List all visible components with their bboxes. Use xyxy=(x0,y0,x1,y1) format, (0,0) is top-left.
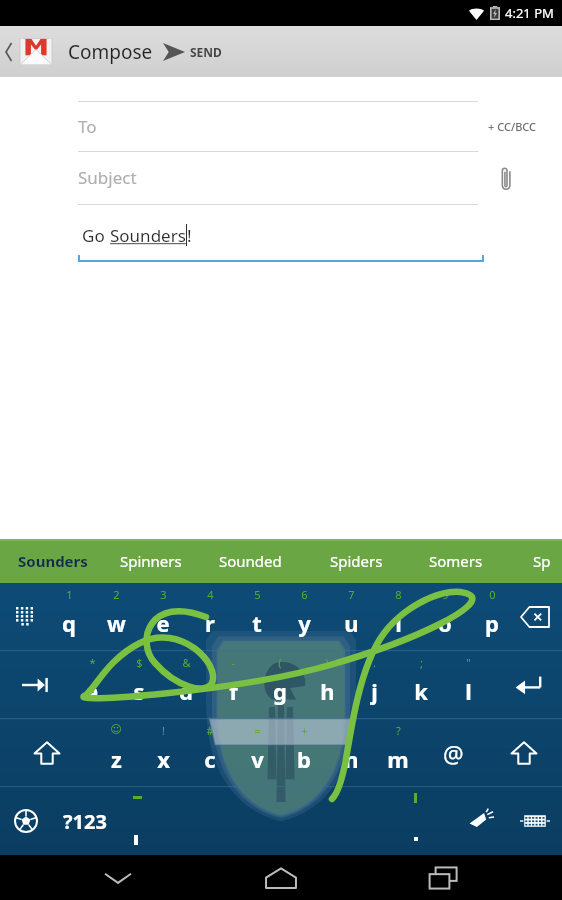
staticText: v xyxy=(251,744,264,774)
button[interactable]: Home xyxy=(236,855,326,900)
button[interactable]: Shift xyxy=(2,719,92,787)
button[interactable]: 1 xyxy=(46,583,92,651)
staticText: 2 xyxy=(113,587,120,602)
staticText: 9 xyxy=(442,587,449,602)
staticText: b xyxy=(297,744,311,774)
staticText: To xyxy=(78,115,97,138)
staticText: a xyxy=(85,676,99,706)
staticText: + xyxy=(301,723,308,738)
button[interactable]: Somers xyxy=(429,539,483,583)
staticText: 1 xyxy=(66,587,73,602)
button[interactable]: + CC/BCC xyxy=(488,119,537,134)
staticText: 0 xyxy=(489,587,496,602)
staticText: ! xyxy=(187,224,192,247)
button[interactable]: Hide keyboard xyxy=(73,855,163,900)
button[interactable] xyxy=(120,787,460,855)
button[interactable]: 7 xyxy=(328,583,374,651)
button[interactable]: Delete xyxy=(508,583,562,651)
staticText: t xyxy=(252,608,262,638)
staticText: x xyxy=(157,744,170,774)
button[interactable]: Navigate up xyxy=(0,32,58,72)
staticText: z xyxy=(111,744,122,774)
staticText: ☺ xyxy=(110,723,122,736)
staticText: u xyxy=(344,608,359,638)
button[interactable]: Go xyxy=(82,212,482,258)
button[interactable]: Enter xyxy=(496,651,562,719)
button[interactable]: Spinners xyxy=(120,539,182,583)
button[interactable]: . xyxy=(351,651,397,719)
button[interactable]: SEND xyxy=(153,26,562,77)
staticText: k xyxy=(414,676,428,706)
button[interactable]: Sounders xyxy=(18,539,88,583)
staticText: n xyxy=(344,744,359,774)
staticText: o xyxy=(438,608,452,638)
button[interactable]: Shift xyxy=(486,719,562,787)
staticText: @ xyxy=(443,738,464,769)
button[interactable]: 8 xyxy=(375,583,421,651)
staticText: h xyxy=(320,676,335,706)
staticText: $ xyxy=(136,655,143,670)
staticText: p xyxy=(485,608,499,638)
staticText: i xyxy=(395,608,402,638)
button[interactable]: Hide keyboard xyxy=(507,787,562,855)
button[interactable]: - xyxy=(210,651,256,719)
button[interactable]: 4 xyxy=(187,583,233,651)
staticText: 5 xyxy=(254,587,261,602)
button[interactable]: ) xyxy=(304,651,350,719)
button[interactable]: Subject xyxy=(78,151,478,204)
button[interactable]: ?123 xyxy=(50,787,120,855)
staticText: ?123 xyxy=(63,808,107,835)
button[interactable]: 2 xyxy=(93,583,139,651)
staticText: 4:21 PM xyxy=(505,4,554,22)
button[interactable]: Keyboard settings xyxy=(2,583,48,651)
staticText: q xyxy=(62,608,76,638)
button[interactable]: + xyxy=(281,719,327,787)
button[interactable]: ☺ xyxy=(93,719,139,787)
button[interactable]: To xyxy=(78,101,478,151)
staticText: d xyxy=(179,676,193,706)
button[interactable]: Sounded xyxy=(219,539,282,583)
staticText: j xyxy=(371,676,378,706)
staticText: 3 xyxy=(160,587,167,602)
button[interactable]: & xyxy=(163,651,209,719)
button[interactable]: $ xyxy=(116,651,162,719)
staticText: ? xyxy=(396,723,401,738)
button[interactable]: Voice input xyxy=(455,787,507,855)
staticText: Compose xyxy=(68,39,153,65)
staticText: ( xyxy=(278,655,282,670)
button[interactable]: 6 xyxy=(281,583,327,651)
staticText: 4 xyxy=(207,587,214,602)
button[interactable]: ; xyxy=(398,651,444,719)
staticText: g xyxy=(273,676,287,706)
button[interactable]: Recent apps xyxy=(399,855,489,900)
button[interactable]: 5 xyxy=(234,583,280,651)
staticText: ; xyxy=(420,655,423,670)
button[interactable]: # xyxy=(187,719,233,787)
staticText: & xyxy=(182,655,191,670)
staticText: × xyxy=(348,723,355,738)
button[interactable]: ( xyxy=(257,651,303,719)
button[interactable]: @ xyxy=(420,719,486,787)
button[interactable]: * xyxy=(69,651,115,719)
button[interactable]: Sp xyxy=(533,539,551,583)
staticText: 8 xyxy=(395,587,402,602)
staticText: y xyxy=(298,608,311,638)
button[interactable]: × xyxy=(328,719,374,787)
button[interactable]: 9 xyxy=(422,583,468,651)
button[interactable]: Change language xyxy=(2,787,50,855)
staticText: Go xyxy=(82,224,110,247)
button[interactable]: 0 xyxy=(469,583,515,651)
button[interactable]: Attach file xyxy=(492,165,520,193)
staticText: f xyxy=(229,676,238,706)
button[interactable]: ! xyxy=(140,719,186,787)
button[interactable]: Spiders xyxy=(330,539,383,583)
staticText: " xyxy=(466,655,471,670)
staticText: . xyxy=(373,655,376,670)
button[interactable]: 3 xyxy=(140,583,186,651)
button[interactable]: Tab xyxy=(2,651,68,719)
staticText: = xyxy=(254,723,261,738)
button[interactable]: " xyxy=(445,651,491,719)
button[interactable]: ? xyxy=(375,719,421,787)
button[interactable]: = xyxy=(234,719,280,787)
staticText: Sp xyxy=(533,551,551,571)
